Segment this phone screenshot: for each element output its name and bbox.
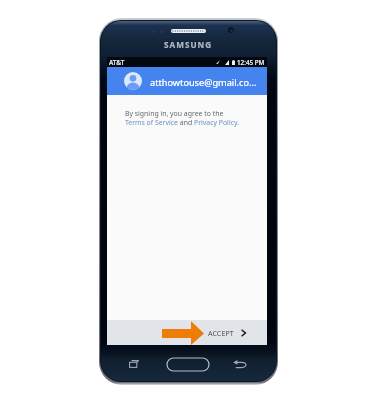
staticText: SAMSUNG <box>164 39 213 50</box>
staticText: atthowtouse@gmail.co... <box>150 76 257 89</box>
button[interactable]: Home <box>167 358 209 371</box>
button[interactable]: Back <box>232 357 247 370</box>
button[interactable]: Privacy Policy. <box>194 118 240 127</box>
staticText: and <box>178 118 194 127</box>
button[interactable]: atthowtouse@gmail.co... <box>107 67 267 95</box>
staticText: 12:45 PM <box>237 58 265 67</box>
button[interactable]: ACCEPT <box>107 320 267 345</box>
button[interactable]: Recent apps <box>127 357 141 370</box>
staticText: AT&T <box>109 58 125 67</box>
button[interactable]: Terms of Service <box>125 118 178 127</box>
staticText: By signing in, you agree to the <box>125 109 224 118</box>
staticText: ACCEPT <box>208 328 234 338</box>
